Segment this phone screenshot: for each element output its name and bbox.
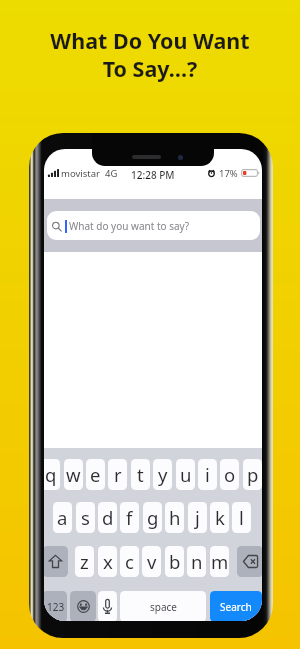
button[interactable]: i bbox=[198, 459, 217, 490]
staticText: x bbox=[103, 549, 113, 574]
staticText: m bbox=[211, 549, 229, 574]
button[interactable]: Dictation bbox=[98, 591, 117, 621]
staticText: c bbox=[125, 549, 134, 574]
staticText: f bbox=[126, 505, 133, 530]
button[interactable]: v bbox=[142, 546, 161, 577]
staticText: e bbox=[90, 462, 101, 487]
button[interactable]: e bbox=[86, 459, 105, 490]
staticText: d bbox=[102, 505, 114, 530]
staticText: 12:28 PM bbox=[131, 168, 175, 182]
button[interactable]: a bbox=[53, 502, 72, 533]
button[interactable]: Search bbox=[210, 591, 262, 621]
button[interactable]: s bbox=[76, 502, 95, 533]
staticText: q bbox=[45, 462, 57, 487]
staticText: a bbox=[57, 505, 68, 530]
staticText: space bbox=[150, 600, 177, 614]
button[interactable]: g bbox=[143, 502, 162, 533]
staticText: w bbox=[66, 462, 81, 487]
button[interactable]: x bbox=[98, 546, 117, 577]
button[interactable]: q bbox=[44, 459, 60, 490]
staticText: j bbox=[195, 505, 200, 530]
staticText: 4G bbox=[105, 167, 118, 178]
button[interactable]: Backspace bbox=[237, 546, 262, 577]
button[interactable]: m bbox=[210, 546, 229, 577]
button[interactable]: z bbox=[75, 546, 94, 577]
button[interactable]: u bbox=[176, 459, 195, 490]
button[interactable]: j bbox=[188, 502, 207, 533]
staticText: z bbox=[80, 549, 89, 574]
button[interactable]: p bbox=[243, 459, 262, 490]
staticText: p bbox=[247, 462, 259, 487]
staticText: s bbox=[81, 505, 90, 530]
staticText: y bbox=[158, 462, 168, 487]
staticText: k bbox=[215, 505, 225, 530]
button[interactable]: t bbox=[131, 459, 150, 490]
button[interactable]: r bbox=[108, 459, 127, 490]
button[interactable]: b bbox=[165, 546, 184, 577]
button[interactable]: k bbox=[210, 502, 229, 533]
button[interactable]: Emoji bbox=[70, 591, 96, 621]
staticText: g bbox=[147, 505, 159, 530]
staticText: What Do You Want To Say…? bbox=[0, 26, 300, 83]
button[interactable]: What do you want to say? bbox=[47, 211, 260, 240]
button[interactable]: Shift bbox=[44, 546, 68, 577]
button[interactable]: d bbox=[98, 502, 117, 533]
staticText: 123 bbox=[47, 600, 65, 614]
staticText: 17% bbox=[219, 167, 238, 178]
staticText: t bbox=[137, 462, 144, 487]
button[interactable]: Numbers bbox=[44, 591, 67, 621]
button[interactable]: y bbox=[153, 459, 172, 490]
button[interactable]: f bbox=[120, 502, 139, 533]
staticText: Search bbox=[220, 600, 252, 614]
staticText: b bbox=[169, 549, 181, 574]
button[interactable]: n bbox=[187, 546, 206, 577]
button[interactable]: l bbox=[232, 502, 251, 533]
button[interactable]: space bbox=[120, 591, 206, 621]
staticText: What do you want to say? bbox=[69, 219, 190, 233]
staticText: u bbox=[180, 462, 192, 487]
staticText: o bbox=[224, 462, 236, 487]
button[interactable]: h bbox=[165, 502, 184, 533]
staticText: r bbox=[114, 462, 122, 487]
staticText: movistar bbox=[61, 167, 100, 178]
staticText: h bbox=[169, 505, 181, 530]
staticText: v bbox=[147, 549, 157, 574]
staticText: l bbox=[239, 505, 244, 530]
button[interactable]: w bbox=[64, 459, 83, 490]
staticText: i bbox=[205, 462, 210, 487]
button[interactable]: o bbox=[220, 459, 239, 490]
staticText: n bbox=[191, 549, 203, 574]
button[interactable]: c bbox=[120, 546, 139, 577]
